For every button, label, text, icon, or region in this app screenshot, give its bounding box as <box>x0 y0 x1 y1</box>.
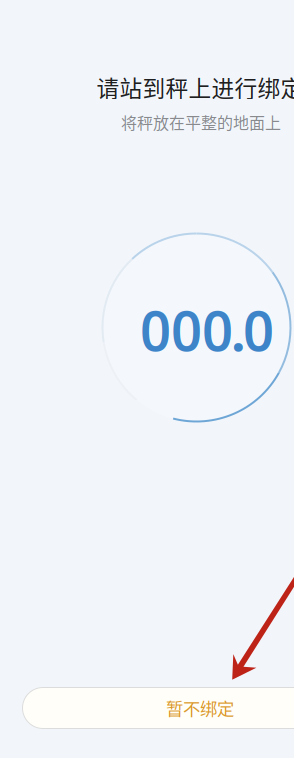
staticText: 000.0 <box>140 295 274 363</box>
staticText: 请站到秤上进行绑定 <box>96 71 294 103</box>
staticText: 将秤放在平整的地面上 <box>121 110 281 134</box>
staticText: 暂不绑定 <box>166 695 234 721</box>
button[interactable]: 暂不绑定 <box>22 687 294 728</box>
